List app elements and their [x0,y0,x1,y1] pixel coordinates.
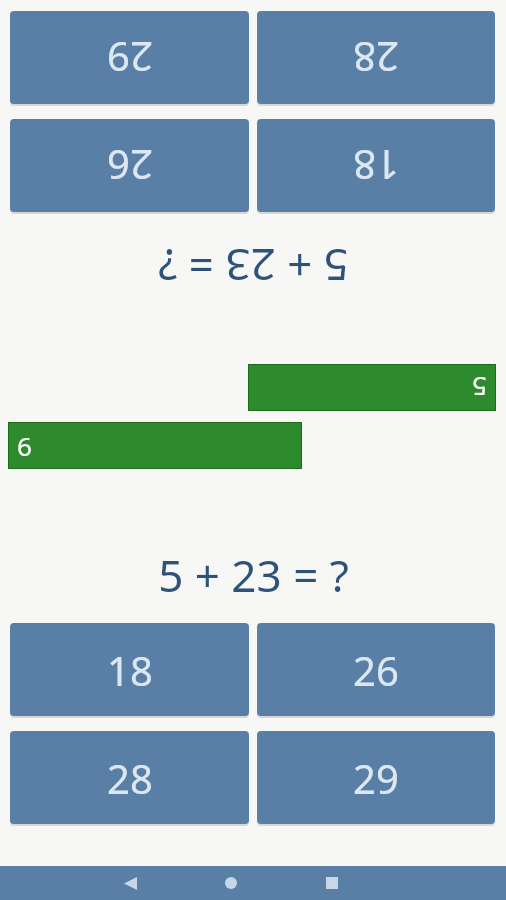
staticText: 26 [353,643,399,697]
staticText: 18 [107,643,153,697]
staticText: 26 [107,139,153,193]
button[interactable]: Back [110,866,150,900]
button[interactable]: 26 [257,623,495,716]
button[interactable]: 18 [10,623,249,716]
button[interactable]: 28 [257,11,495,104]
staticText: 6 [17,428,32,463]
staticText: 28 [107,751,153,805]
button[interactable]: 29 [10,11,249,104]
button[interactable]: Recent apps [312,866,352,900]
staticText: 29 [107,31,153,85]
staticText: 29 [353,751,399,805]
staticText: 5 + 23 = ? [158,545,349,605]
button[interactable]: Home [211,866,251,900]
staticText: 28 [353,31,399,85]
button[interactable]: 26 [10,119,249,212]
button[interactable]: 29 [257,731,495,824]
staticText: 18 [353,139,399,193]
staticText: 5 + 23 = ? [158,236,349,296]
staticText: 5 [472,370,487,405]
button[interactable]: 18 [257,119,495,212]
button[interactable]: 28 [10,731,249,824]
